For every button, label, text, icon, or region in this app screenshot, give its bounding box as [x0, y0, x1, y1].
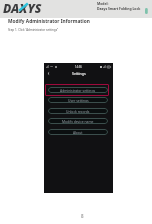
- button[interactable]: Modify device name: [48, 118, 108, 124]
- staticText: Modify Administrator Information: [8, 18, 90, 25]
- staticText: Model:: [97, 1, 109, 6]
- staticText: 14:36: [75, 65, 82, 69]
- staticText: Administrator settings: [60, 88, 96, 93]
- staticText: HD: [50, 65, 54, 68]
- staticText: Daxys Smart Folding Lock: [97, 6, 141, 11]
- button[interactable]: Unlock records: [48, 108, 108, 114]
- staticText: Unlock records: [66, 109, 90, 114]
- staticText: 8: [81, 213, 84, 219]
- button[interactable]: Back: [46, 71, 51, 76]
- button[interactable]: User settings: [48, 97, 108, 103]
- staticText: Settings: [72, 71, 86, 76]
- button[interactable]: Administrator settings: [48, 87, 108, 93]
- staticText: Step 1. Click "Administrator settings": [8, 28, 59, 32]
- staticText: User settings: [68, 98, 89, 103]
- staticText: DAXYS: [3, 0, 42, 17]
- staticText: Modify device name: [62, 119, 94, 124]
- staticText: About: [73, 130, 83, 135]
- button[interactable]: About: [48, 129, 108, 135]
